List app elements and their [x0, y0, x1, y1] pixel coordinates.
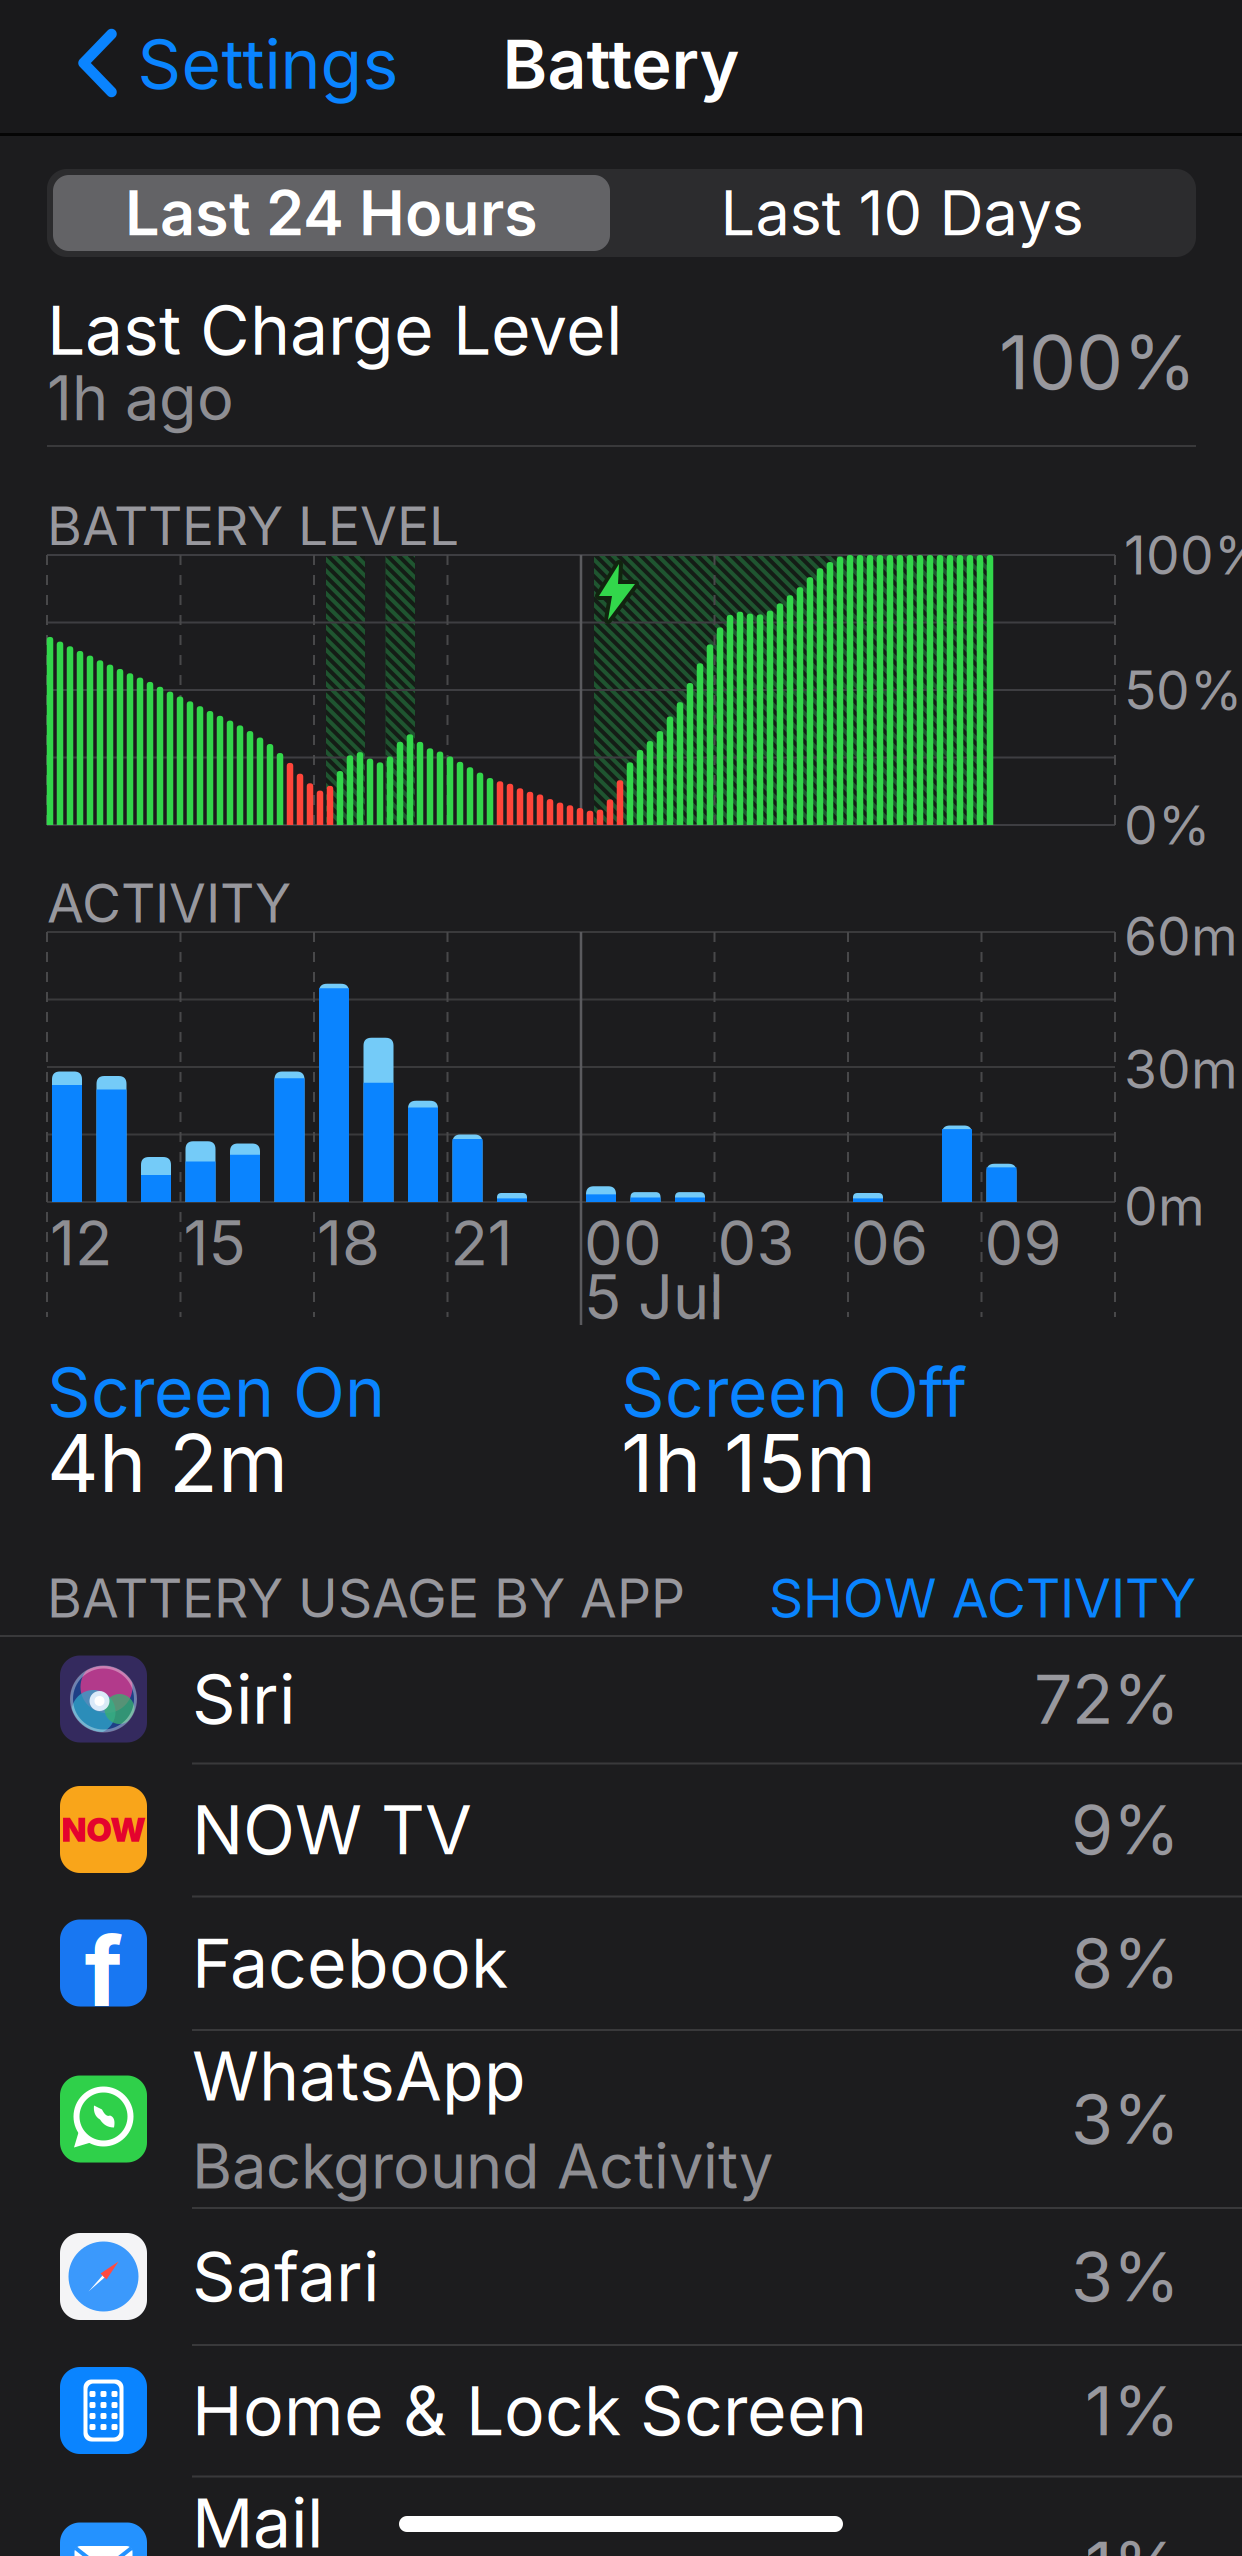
staticText: Background Activity — [192, 2130, 773, 2202]
staticText: Last 24 Hours — [125, 177, 538, 249]
button[interactable]: NOW — [0, 1763, 1242, 1896]
button[interactable]: WhatsApp — [0, 2030, 1242, 2208]
staticText: 3% — [1071, 2079, 1180, 2159]
staticText: 100% — [1124, 523, 1242, 586]
button[interactable]: Safari — [0, 2210, 1242, 2343]
button[interactable]: Last 24 Hours — [53, 175, 610, 251]
staticText: 03 — [717, 1207, 794, 1279]
staticText: 5 Jul — [584, 1261, 724, 1333]
staticText: Safari — [192, 2236, 379, 2317]
staticText: Facebook — [192, 1923, 508, 2003]
staticText: 09 — [984, 1207, 1061, 1279]
staticText: 21 — [450, 1207, 512, 1279]
staticText: 3% — [1071, 2236, 1180, 2317]
staticText: 1h 15m — [621, 1416, 876, 1510]
staticText: WhatsApp — [192, 2036, 526, 2116]
staticText: Home & Lock Screen — [192, 2370, 867, 2451]
staticText: 00 — [584, 1207, 662, 1279]
staticText: 12 — [50, 1207, 112, 1279]
staticText: 0m — [1124, 1174, 1205, 1237]
staticText: 15 — [183, 1207, 245, 1279]
staticText: 1% — [1085, 2370, 1180, 2451]
staticText: 60m — [1124, 904, 1238, 967]
staticText: 0% — [1124, 793, 1210, 856]
staticText: Settings — [137, 24, 398, 104]
staticText: Screen Off — [621, 1352, 967, 1432]
button[interactable]: f — [0, 1896, 1242, 2029]
staticText: 9% — [1071, 1789, 1180, 1870]
button[interactable]: Last 10 Days — [623, 175, 1180, 251]
staticText: Screen On — [47, 1352, 385, 1432]
staticText: f — [84, 1914, 122, 2028]
staticText: BATTERY LEVEL — [47, 494, 459, 557]
button[interactable]: Mail — [0, 2477, 1242, 2556]
staticText: 100% — [999, 318, 1196, 406]
button[interactable]: SHOW ACTIVITY — [596, 1566, 1196, 1629]
button[interactable]: Back to Settings — [81, 0, 398, 130]
button[interactable]: Home & Lock Screen — [0, 2344, 1242, 2477]
staticText: 4h 2m — [47, 1416, 288, 1510]
staticText: NOW TV — [192, 1789, 472, 1870]
staticText: 30m — [1124, 1037, 1238, 1100]
staticText: ACTIVITY — [47, 871, 291, 934]
staticText: 1h ago — [47, 362, 234, 434]
staticText: 8% — [1071, 1923, 1180, 2003]
staticText: 72% — [1034, 1659, 1180, 1739]
staticText: Battery — [502, 24, 739, 104]
staticText: Last 10 Days — [720, 177, 1083, 249]
staticText: SHOW ACTIVITY — [769, 1566, 1196, 1629]
staticText: Siri — [192, 1659, 295, 1739]
staticText: NOW — [61, 1810, 145, 1849]
staticText: 06 — [851, 1207, 928, 1279]
button[interactable]: Siri — [0, 1632, 1242, 1765]
staticText: Mail — [192, 2483, 323, 2556]
staticText: 50% — [1124, 658, 1242, 721]
staticText: BATTERY USAGE BY APP — [47, 1566, 685, 1629]
staticText: 18 — [317, 1207, 380, 1279]
staticText: Last Charge Level — [47, 290, 622, 370]
staticText: 1% — [1085, 2526, 1180, 2556]
